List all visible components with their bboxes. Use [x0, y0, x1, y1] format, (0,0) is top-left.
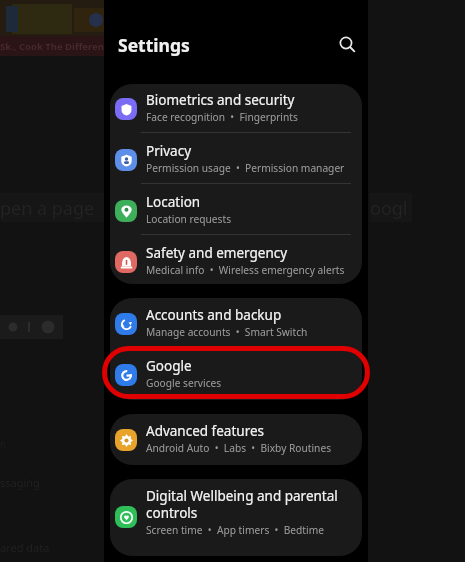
- staticText: Permission usage • Permission manager: [146, 161, 345, 175]
- staticText: pen a page: [0, 196, 95, 221]
- staticText: Privacy: [146, 142, 192, 160]
- button[interactable]: Google: [110, 354, 362, 400]
- staticText: Advanced features: [146, 422, 265, 440]
- staticText: Digital Wellbeing and parental controls: [146, 487, 338, 522]
- button[interactable]: Digital Wellbeing and parental controls: [110, 484, 362, 550]
- staticText: Location requests: [146, 212, 232, 226]
- staticText: ssaging: [0, 475, 40, 490]
- button[interactable]: Location: [110, 190, 362, 236]
- staticText: Biometrics and security: [146, 91, 295, 109]
- staticText: Google: [146, 357, 192, 375]
- staticText: Accounts and backup: [146, 306, 282, 324]
- button[interactable]: Advanced features: [110, 419, 362, 465]
- button[interactable]: Privacy: [110, 139, 362, 185]
- button[interactable]: Search settings: [332, 29, 363, 60]
- button[interactable]: Safety and emergency: [110, 241, 362, 287]
- staticText: oogle: [370, 196, 412, 225]
- staticText: Safety and emergency: [146, 244, 288, 262]
- staticText: Location: [146, 193, 201, 211]
- staticText: Screen time • App timers • Bedtime: [146, 523, 324, 537]
- staticText: Face recognition • Fingerprints: [146, 110, 298, 124]
- button[interactable]: Biometrics and security: [110, 88, 362, 134]
- staticText: ared data: [0, 540, 50, 555]
- button[interactable]: Accounts and backup: [110, 303, 362, 349]
- staticText: Google services: [146, 376, 222, 390]
- staticText: Sk., Cook The Difference: [0, 40, 115, 53]
- staticText: Manage accounts • Smart Switch: [146, 325, 308, 339]
- staticText: Settings: [118, 33, 190, 57]
- staticText: Android Auto • Labs • Bixby Routines: [146, 441, 332, 455]
- staticText: Medical info • Wireless emergency alerts: [146, 263, 345, 277]
